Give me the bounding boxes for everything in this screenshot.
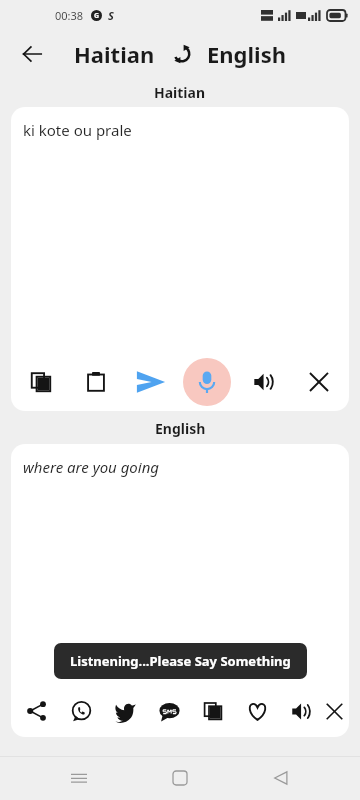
button[interactable]: Speak bbox=[242, 360, 286, 404]
button[interactable]: Swap languages bbox=[167, 39, 197, 69]
button[interactable]: SMS bbox=[147, 689, 191, 733]
staticText: English bbox=[207, 39, 287, 69]
staticText: 00:38 bbox=[55, 8, 84, 23]
staticText: ki kote ou prale bbox=[23, 120, 132, 140]
button[interactable]: Microphone bbox=[183, 358, 231, 406]
button[interactable]: Back bbox=[259, 756, 303, 800]
button[interactable]: Favorite bbox=[235, 689, 279, 733]
staticText: Haitian bbox=[74, 39, 155, 69]
button[interactable]: Share bbox=[15, 689, 59, 733]
staticText: S bbox=[108, 8, 114, 23]
staticText: English bbox=[155, 419, 206, 438]
button[interactable]: Copy bbox=[19, 360, 63, 404]
button[interactable]: Translate bbox=[129, 360, 173, 404]
button[interactable]: Clear bbox=[297, 360, 341, 404]
button[interactable]: English bbox=[207, 39, 287, 69]
button[interactable]: Speak bbox=[279, 689, 323, 733]
staticText: where are you going bbox=[23, 457, 160, 477]
button[interactable]: WhatsApp bbox=[59, 689, 103, 733]
button[interactable]: Paste bbox=[74, 360, 118, 404]
button[interactable]: Home bbox=[158, 756, 202, 800]
button[interactable]: Twitter bbox=[103, 689, 147, 733]
staticText: Listnening...Please Say Something bbox=[70, 652, 291, 670]
staticText: Haitian bbox=[154, 83, 206, 102]
button[interactable]: Haitian bbox=[74, 39, 155, 69]
button[interactable]: Back bbox=[10, 32, 54, 76]
staticText: G bbox=[94, 11, 100, 21]
button[interactable]: Copy bbox=[191, 689, 235, 733]
button[interactable]: Close bbox=[323, 689, 345, 733]
button[interactable]: Recents bbox=[57, 756, 101, 800]
